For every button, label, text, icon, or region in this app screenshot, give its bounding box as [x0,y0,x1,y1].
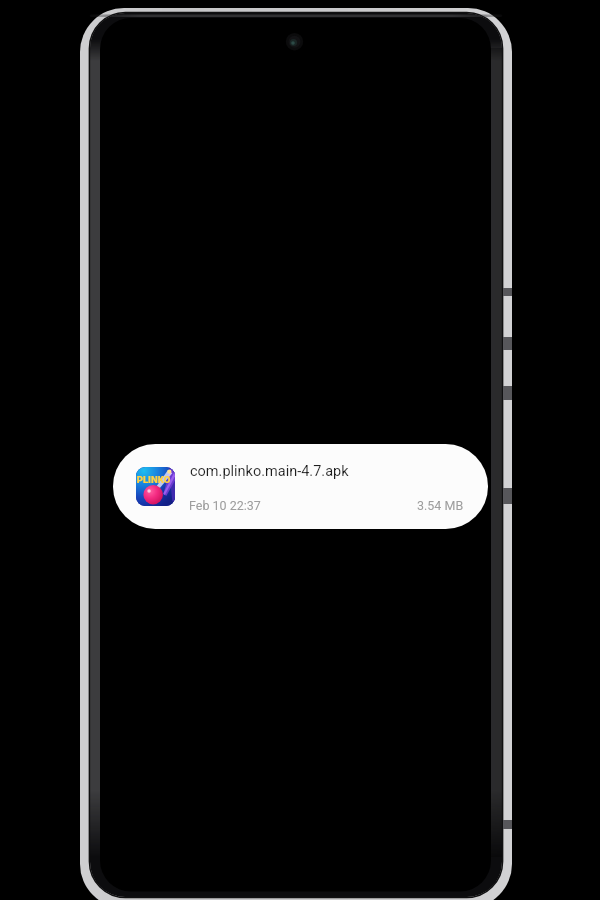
button[interactable]: PLINKO [113,444,488,529]
staticText: Feb 10 22:37 [189,498,261,513]
staticText: PLINKO [136,474,173,485]
staticText: 3.54 MB [417,498,464,513]
staticText: com.plinko.main-4.7.apk [190,463,349,480]
